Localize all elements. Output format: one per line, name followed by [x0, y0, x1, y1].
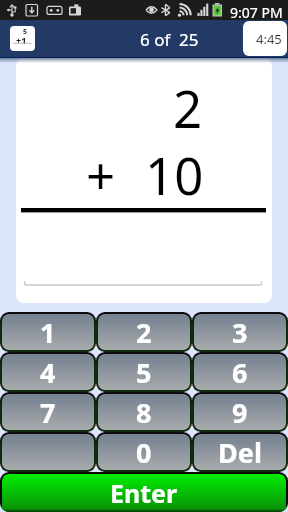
button[interactable]: 9 — [192, 392, 288, 432]
staticText: 2 — [173, 73, 203, 142]
button[interactable]: 1 — [0, 312, 96, 352]
staticText: 10 — [145, 140, 204, 209]
staticText: 4:45 — [256, 30, 282, 48]
button[interactable]: 2 — [96, 312, 192, 352]
button[interactable]: 0 — [96, 432, 192, 472]
button[interactable]: Enter — [0, 472, 288, 512]
staticText: 7 — [40, 394, 56, 430]
staticText: 3 — [232, 314, 248, 350]
staticText: 1 — [40, 314, 56, 350]
button[interactable]: 6 — [192, 352, 288, 392]
button[interactable]: Answer input — [24, 245, 263, 286]
button[interactable]: blank key — [0, 432, 96, 472]
staticText: Enter — [110, 476, 178, 510]
button[interactable]: 3 — [192, 312, 288, 352]
staticText: 6 — [232, 354, 248, 390]
staticText: 2 — [136, 314, 152, 350]
button[interactable]: Timer — [243, 21, 287, 56]
staticText: Del — [218, 434, 262, 470]
staticText: 5 — [23, 27, 28, 37]
button[interactable]: App icon — [10, 26, 35, 51]
button[interactable]: Del — [192, 432, 288, 472]
staticText: 4 — [40, 354, 56, 390]
staticText: 6 of 25 — [140, 28, 199, 51]
staticText: 5 — [136, 354, 152, 390]
staticText: +1 — [16, 34, 27, 46]
staticText: 0 — [136, 434, 152, 470]
staticText: 9:07 PM — [230, 3, 283, 22]
staticText: + — [86, 140, 116, 209]
button[interactable]: 5 — [96, 352, 192, 392]
button[interactable]: 8 — [96, 392, 192, 432]
staticText: 9 — [232, 394, 248, 430]
button[interactable]: 4 — [0, 352, 96, 392]
button[interactable]: 7 — [0, 392, 96, 432]
staticText: 8 — [136, 394, 152, 430]
